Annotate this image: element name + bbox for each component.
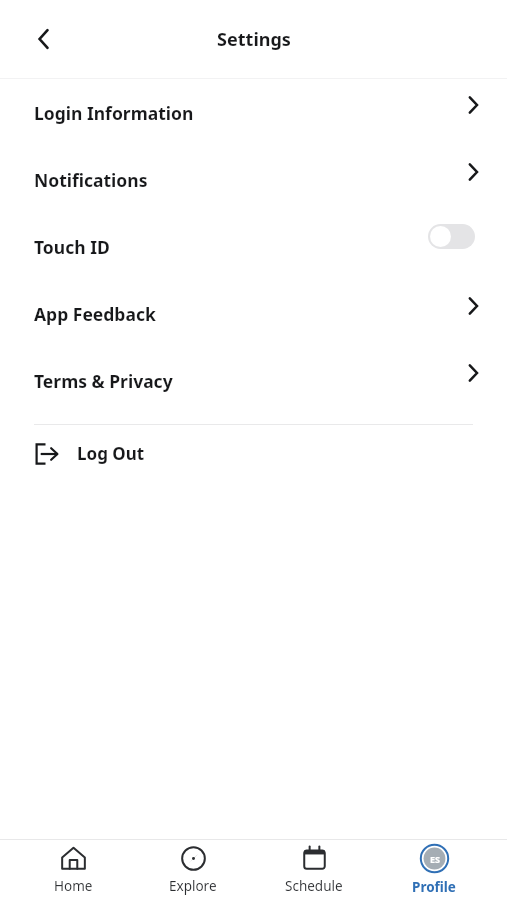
button[interactable]: Schedule [266,845,362,895]
button[interactable]: Touch ID [0,213,507,280]
staticText: Explore [169,877,217,895]
staticText: Home [54,877,93,895]
staticText: Log Out [77,442,145,465]
staticText: Notifications [34,168,148,192]
button[interactable]: ES [386,844,482,896]
button[interactable]: Log Out [0,425,507,482]
staticText: Settings [217,27,291,52]
button[interactable]: Touch ID toggle [428,224,475,249]
button[interactable]: Terms & Privacy [0,347,507,414]
button[interactable]: Notifications [0,146,507,213]
staticText: Terms & Privacy [34,369,173,393]
staticText: Touch ID [34,235,110,259]
staticText: ES [430,853,440,865]
staticText: Login Information [34,101,194,125]
staticText: Profile [412,878,456,896]
staticText: App Feedback [34,302,156,326]
button[interactable]: Home [25,845,121,895]
button[interactable]: App Feedback [0,280,507,347]
staticText: Schedule [285,877,343,895]
button[interactable]: Explore [145,845,241,895]
button[interactable]: Login Information [0,79,507,146]
button[interactable]: Back [22,17,66,61]
